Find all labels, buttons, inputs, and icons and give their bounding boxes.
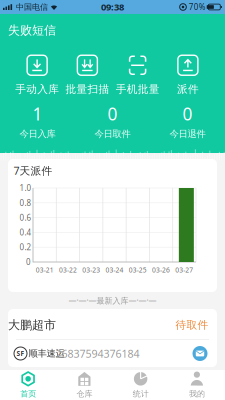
staticText: 统计 — [133, 389, 149, 399]
staticText: 中国电信 — [16, 2, 48, 12]
button[interactable]: 大鹏超市 — [8, 309, 217, 339]
staticText: 0 — [107, 102, 117, 125]
button[interactable]: 首页 — [0, 371, 56, 399]
staticText: 今日取件 — [94, 128, 130, 140]
button[interactable]: SF — [8, 340, 217, 367]
staticText: 顺丰速运 — [28, 348, 64, 359]
staticText: 0.6 — [19, 212, 31, 223]
button[interactable]: 我的 — [169, 371, 225, 399]
staticText: 0.4 — [19, 227, 31, 238]
staticText: 手动入库 — [15, 83, 59, 96]
staticText: 今日入库 — [19, 128, 55, 140]
staticText: 派件 — [177, 83, 199, 96]
staticText: 手机批量 — [116, 83, 160, 96]
staticText: 失败短信 — [8, 23, 56, 38]
staticText: SF — [16, 349, 24, 358]
staticText: 03-26 — [152, 266, 170, 274]
staticText: 03-24 — [105, 266, 123, 274]
button[interactable]: 派件 — [163, 55, 213, 95]
staticText: 26837594376184 — [55, 346, 139, 361]
staticText: 首页 — [20, 389, 36, 399]
staticText: 我的 — [189, 389, 205, 399]
staticText: 大鹏超市 — [8, 318, 56, 332]
staticText: —·—·—最新入库—·—·— — [68, 295, 156, 306]
staticText: 03-23 — [82, 266, 100, 274]
staticText: 03-21 — [36, 266, 54, 274]
staticText: 70% — [189, 2, 206, 12]
staticText: 03-22 — [59, 266, 77, 274]
staticText: 1 — [32, 102, 42, 125]
staticText: 03-25 — [129, 266, 147, 274]
staticText: 7天派件 — [13, 163, 52, 178]
staticText: 0.8 — [19, 197, 31, 208]
staticText: 1.0 — [19, 183, 31, 193]
button[interactable]: 仓库 — [56, 371, 112, 399]
button[interactable]: 发送短信 — [191, 345, 208, 362]
staticText: 0 — [182, 102, 192, 125]
staticText: 09:38 — [101, 1, 124, 13]
button[interactable]: 批量扫描 — [62, 55, 112, 95]
staticText: 待取件 — [175, 318, 208, 331]
button[interactable]: 手机批量 — [112, 55, 163, 95]
staticText: 0.2 — [19, 242, 31, 252]
staticText: 0 — [26, 257, 31, 267]
staticText: 今日退件 — [169, 128, 205, 140]
staticText: 仓库 — [76, 389, 92, 399]
staticText: 03-27 — [175, 266, 193, 274]
button[interactable]: 手动入库 — [12, 55, 62, 95]
staticText: 批量扫描 — [65, 83, 109, 96]
button[interactable]: 统计 — [112, 371, 169, 399]
